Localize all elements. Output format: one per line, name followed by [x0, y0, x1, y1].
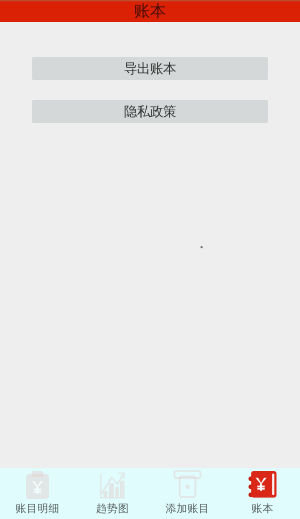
staticText: 趋势图	[96, 502, 129, 515]
staticText: 账本	[251, 502, 273, 515]
staticText: 导出账本	[124, 60, 176, 77]
button[interactable]: 隐私政策	[32, 100, 268, 123]
staticText: 隐私政策	[124, 103, 176, 120]
staticText: 账目明细	[15, 502, 59, 515]
button[interactable]: 账目明细	[0, 468, 75, 519]
button[interactable]: 账本	[225, 468, 300, 519]
staticText: 账本	[134, 1, 166, 21]
staticText: 添加账目	[165, 502, 209, 515]
button[interactable]: 添加账目	[150, 468, 225, 519]
button[interactable]: 趋势图	[75, 468, 150, 519]
button[interactable]: 导出账本	[32, 57, 268, 80]
